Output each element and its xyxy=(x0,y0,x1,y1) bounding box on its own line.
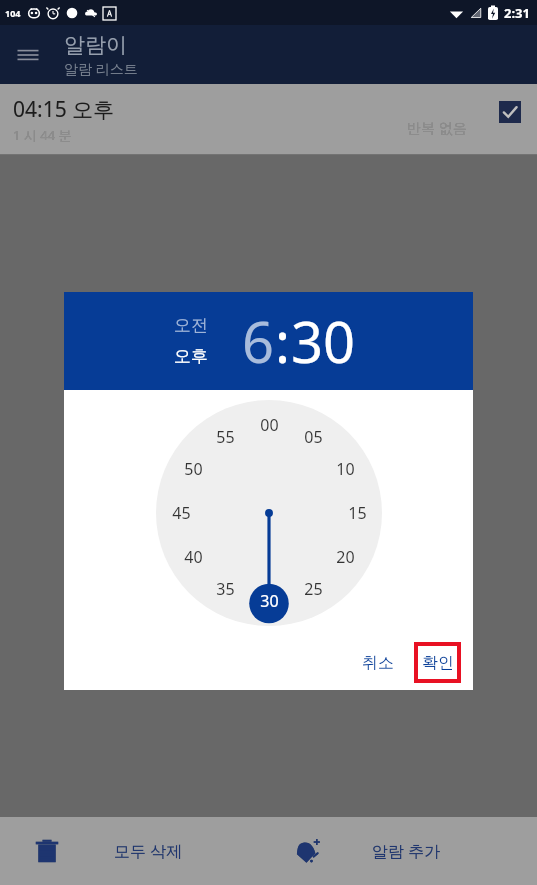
button[interactable]: Minute picker clock face xyxy=(64,390,473,635)
other: Add alarm xyxy=(290,834,324,868)
staticText: 45 xyxy=(172,502,191,524)
button[interactable]: 04:15 오후 xyxy=(0,84,537,155)
staticText: 확인 xyxy=(422,653,454,673)
button[interactable]: 확인 xyxy=(414,642,461,683)
staticText: : xyxy=(275,303,291,379)
button[interactable]: 30 xyxy=(291,303,356,379)
button[interactable]: 오전 xyxy=(170,314,212,337)
staticText: 55 xyxy=(216,426,235,448)
staticText: 반복 없음 xyxy=(407,118,467,137)
staticText: 40 xyxy=(184,546,203,568)
button[interactable]: Toggle alarm enabled xyxy=(497,99,523,125)
staticText: 1 시 44 분 xyxy=(13,126,72,144)
staticText: 30 xyxy=(291,303,356,379)
staticText: 20 xyxy=(336,546,355,568)
button[interactable]: 취소 xyxy=(350,646,406,680)
staticText: 알람 추가 xyxy=(372,840,441,862)
button[interactable]: Add alarm xyxy=(268,817,537,885)
other: Add alarm xyxy=(290,834,324,868)
button[interactable]: Open navigation menu xyxy=(8,35,48,75)
button[interactable]: 오후 xyxy=(170,345,212,368)
staticText: 오전 xyxy=(174,315,208,336)
button[interactable]: Delete all alarms xyxy=(0,817,268,885)
staticText: 25 xyxy=(304,578,323,600)
staticText: 15 xyxy=(348,502,367,524)
button[interactable]: 6 xyxy=(242,303,275,379)
staticText: 10 xyxy=(336,458,355,480)
staticText: 35 xyxy=(216,578,235,600)
staticText: 오후 xyxy=(174,346,208,367)
staticText: 50 xyxy=(184,458,203,480)
staticText: 알람 리스트 xyxy=(64,59,138,78)
other: Delete all alarms xyxy=(30,834,64,868)
staticText: 알람이 xyxy=(64,32,127,58)
staticText: 00 xyxy=(260,414,279,436)
staticText: 2:31 xyxy=(504,4,530,22)
staticText: 취소 xyxy=(362,653,394,673)
staticText: 30 xyxy=(260,590,279,612)
staticText: 04:15 오후 xyxy=(13,95,115,124)
staticText: 알람 추가 xyxy=(372,840,441,862)
staticText: 1 시 44 분 xyxy=(13,126,72,144)
staticText: 모두 삭제 xyxy=(114,840,183,862)
other: Delete all alarms xyxy=(30,834,64,868)
staticText: 6 xyxy=(242,303,275,379)
staticText: 반복 없음 xyxy=(407,118,467,137)
staticText: 04:15 오후 xyxy=(13,95,115,124)
staticText: 05 xyxy=(304,426,323,448)
staticText: 104 xyxy=(5,7,21,19)
staticText: 모두 삭제 xyxy=(114,840,183,862)
